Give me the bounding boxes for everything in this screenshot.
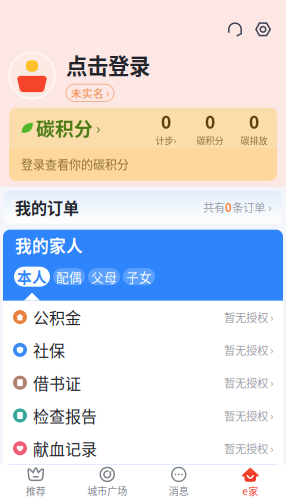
staticText: 借书证 bbox=[33, 371, 81, 394]
staticText: 计步› bbox=[155, 134, 176, 147]
button[interactable]: 子女 bbox=[123, 268, 155, 285]
staticText: 暂无授权 bbox=[224, 309, 268, 325]
staticText: 暂无授权 bbox=[224, 342, 268, 358]
staticText: 我的家人 bbox=[15, 233, 83, 257]
staticText: 本人 bbox=[17, 266, 47, 287]
staticText: › bbox=[270, 374, 273, 391]
button[interactable]: 社保 bbox=[3, 333, 283, 366]
button[interactable]: 点击登录 bbox=[0, 49, 286, 102]
button[interactable]: 碳积分 bbox=[9, 108, 277, 181]
staticText: 城市广场 bbox=[87, 483, 127, 498]
staticText: 碳积分 bbox=[196, 134, 223, 147]
staticText: 未实名 › bbox=[71, 85, 109, 101]
button[interactable]: 献血记录 bbox=[3, 432, 283, 465]
staticText: 0 bbox=[205, 109, 215, 134]
staticText: › bbox=[270, 309, 273, 325]
staticText: › bbox=[270, 440, 273, 456]
staticText: 暂无授权 bbox=[224, 440, 268, 456]
staticText: 碳积分 bbox=[36, 114, 93, 141]
staticText: 子女 bbox=[126, 267, 152, 286]
staticText: 0 bbox=[161, 109, 171, 134]
button[interactable]: e家 bbox=[214, 465, 286, 500]
button[interactable]: 推荐 bbox=[0, 465, 71, 500]
staticText: 0 bbox=[225, 199, 232, 215]
button[interactable]: 城市广场 bbox=[71, 465, 143, 500]
staticText: 公积金 bbox=[33, 305, 81, 329]
staticText: 推荐 bbox=[26, 483, 46, 498]
button[interactable]: 父母 bbox=[88, 268, 120, 285]
button[interactable]: 配偶 bbox=[53, 268, 85, 285]
staticText: 父母 bbox=[91, 267, 117, 286]
staticText: 暂无授权 bbox=[224, 407, 268, 424]
staticText: › bbox=[270, 407, 273, 424]
staticText: 条订单 › bbox=[232, 199, 271, 215]
button[interactable]: 消息 bbox=[143, 465, 214, 500]
staticText: 共有 bbox=[203, 199, 225, 215]
button[interactable]: 客服 bbox=[221, 17, 249, 41]
button[interactable]: 本人 bbox=[14, 267, 50, 287]
staticText: e家 bbox=[242, 483, 258, 498]
button[interactable]: 设置 bbox=[249, 17, 277, 41]
button[interactable]: 公积金 bbox=[3, 301, 283, 333]
staticText: › bbox=[270, 342, 273, 358]
staticText: 配偶 bbox=[56, 267, 82, 286]
staticText: 社保 bbox=[33, 338, 65, 361]
staticText: 0 bbox=[249, 109, 259, 134]
staticText: 我的订单 bbox=[15, 196, 79, 219]
staticText: › bbox=[96, 117, 100, 138]
button[interactable]: 借书证 bbox=[3, 366, 283, 399]
staticText: 碳排放 bbox=[240, 134, 267, 147]
button[interactable]: 检查报告 bbox=[3, 399, 283, 432]
staticText: 登录查看你的碳积分 bbox=[21, 155, 129, 173]
staticText: 点击登录 bbox=[66, 49, 150, 80]
button[interactable]: 我的订单 bbox=[4, 191, 282, 224]
staticText: 检查报告 bbox=[33, 404, 97, 427]
staticText: 献血记录 bbox=[33, 437, 97, 460]
staticText: 消息 bbox=[169, 483, 189, 498]
staticText: 暂无授权 bbox=[224, 374, 268, 391]
